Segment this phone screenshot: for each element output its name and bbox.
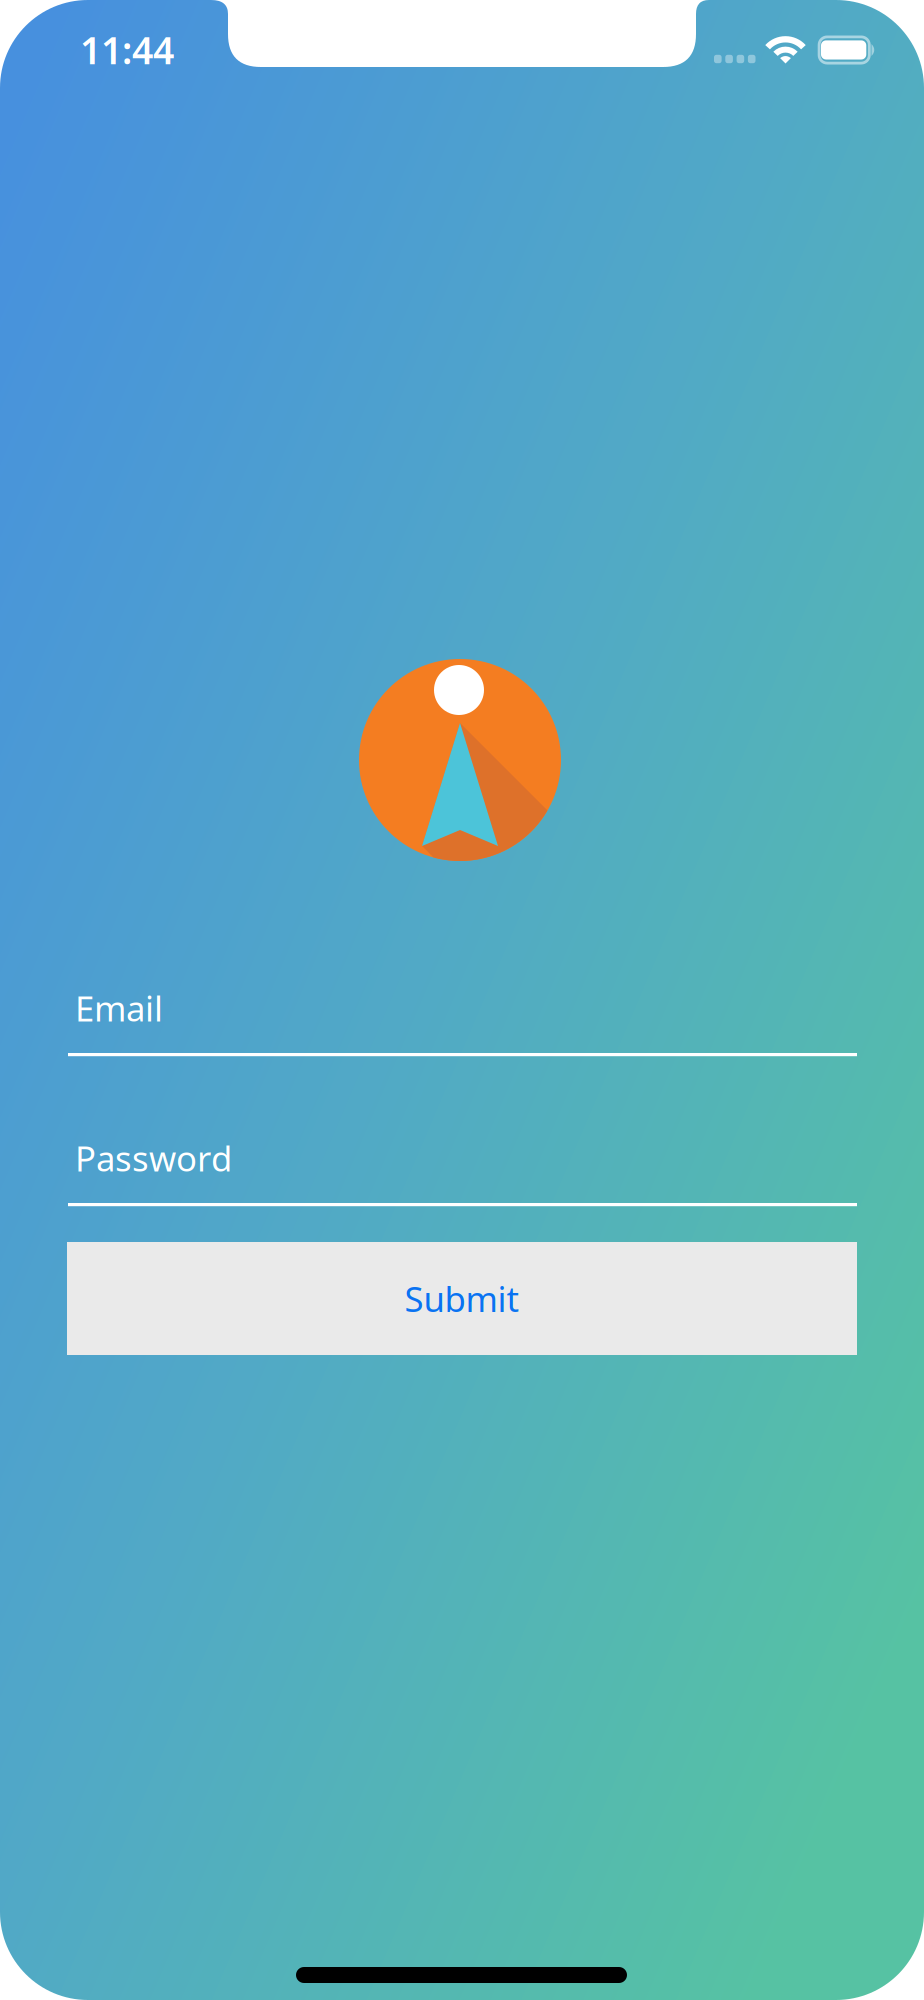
staticText: Password (75, 1135, 232, 1181)
button[interactable]: Password (68, 1120, 857, 1205)
staticText: 11:44 (80, 25, 174, 75)
staticText: Email (75, 985, 163, 1031)
staticText: Submit (404, 1275, 519, 1321)
button[interactable]: Email (68, 970, 857, 1055)
button[interactable]: Submit (67, 1242, 857, 1355)
